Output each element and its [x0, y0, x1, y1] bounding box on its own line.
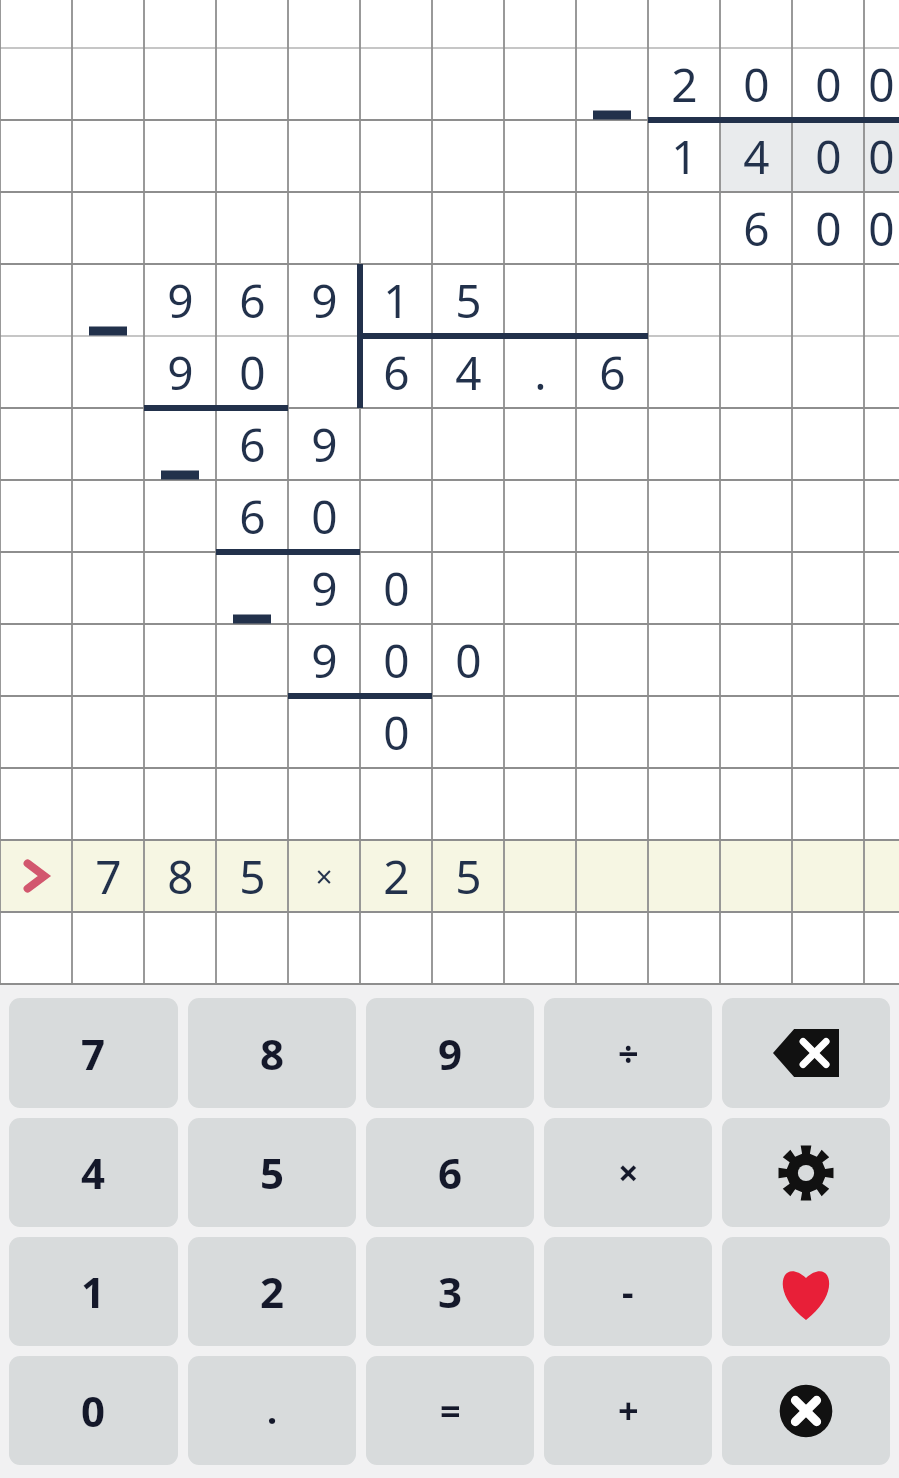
staticText: 2 — [671, 53, 698, 116]
staticText: 0 — [383, 629, 410, 692]
button[interactable]: Close — [722, 1356, 890, 1465]
staticText: 7 — [95, 845, 122, 908]
staticText: 0 — [815, 197, 842, 260]
staticText: 0 — [868, 53, 895, 116]
staticText: 0 — [81, 1382, 106, 1439]
staticText: 9 — [311, 557, 338, 620]
staticText: 2 — [260, 1263, 285, 1320]
staticText: 5 — [239, 845, 266, 908]
staticText: 0 — [815, 53, 842, 116]
staticText: 9 — [438, 1025, 463, 1082]
button[interactable]: 7 — [9, 998, 178, 1108]
staticText: 7 — [81, 1025, 106, 1082]
staticText: 9 — [311, 269, 338, 332]
staticText: 6 — [438, 1144, 463, 1201]
button[interactable]: 1 — [9, 1237, 178, 1346]
staticText: 6 — [383, 341, 410, 404]
button[interactable]: × — [544, 1118, 712, 1227]
staticText: 0 — [311, 485, 338, 548]
button[interactable]: 9 — [366, 998, 534, 1108]
staticText: 0 — [868, 125, 895, 188]
button[interactable]: 5 — [188, 1118, 356, 1227]
staticText: 1 — [671, 125, 698, 188]
staticText: 6 — [743, 197, 770, 260]
staticText: ÷ — [618, 1029, 639, 1078]
staticText: 1 — [81, 1263, 106, 1320]
staticText: 4 — [455, 341, 482, 404]
button[interactable]: 8 — [188, 998, 356, 1108]
staticText: 0 — [743, 53, 770, 116]
staticText: × — [315, 856, 333, 897]
staticText: 3 — [438, 1263, 463, 1320]
staticText: 9 — [167, 269, 194, 332]
staticText: 6 — [239, 485, 266, 548]
button[interactable]: Favorite — [722, 1237, 890, 1346]
staticText: 5 — [455, 845, 482, 908]
button[interactable]: 3 — [366, 1237, 534, 1346]
staticText: 8 — [260, 1025, 285, 1082]
staticText: 0 — [815, 125, 842, 188]
staticText: 0 — [383, 701, 410, 764]
staticText: 0 — [383, 557, 410, 620]
staticText: - — [622, 1267, 634, 1316]
button[interactable]: - — [544, 1237, 712, 1346]
button[interactable]: 0 — [9, 1356, 178, 1465]
button[interactable]: . — [188, 1356, 356, 1465]
staticText: 6 — [239, 269, 266, 332]
staticText: 4 — [743, 125, 770, 188]
button[interactable]: Backspace — [722, 998, 890, 1108]
staticText: 0 — [239, 341, 266, 404]
staticText: . — [267, 1386, 278, 1435]
staticText: + — [618, 1386, 639, 1435]
staticText: 5 — [260, 1144, 285, 1201]
staticText: 9 — [167, 341, 194, 404]
staticText: = — [440, 1386, 461, 1435]
button[interactable]: Settings — [722, 1118, 890, 1227]
staticText: . — [534, 341, 547, 404]
staticText: 4 — [81, 1144, 106, 1201]
button[interactable]: = — [366, 1356, 534, 1465]
staticText: 0 — [455, 629, 482, 692]
button[interactable]: ÷ — [544, 998, 712, 1108]
staticText: 9 — [311, 413, 338, 476]
staticText: 6 — [239, 413, 266, 476]
button[interactable]: 2 — [188, 1237, 356, 1346]
staticText: × — [618, 1148, 639, 1197]
staticText: 0 — [868, 197, 895, 260]
button[interactable]: 6 — [366, 1118, 534, 1227]
button[interactable]: 2 — [0, 0, 899, 985]
staticText: 2 — [383, 845, 410, 908]
button[interactable]: 4 — [9, 1118, 178, 1227]
staticText: 5 — [455, 269, 482, 332]
button[interactable]: + — [544, 1356, 712, 1465]
staticText: 6 — [599, 341, 626, 404]
staticText: 9 — [311, 629, 338, 692]
staticText: 8 — [167, 845, 194, 908]
staticText: 1 — [383, 269, 410, 332]
